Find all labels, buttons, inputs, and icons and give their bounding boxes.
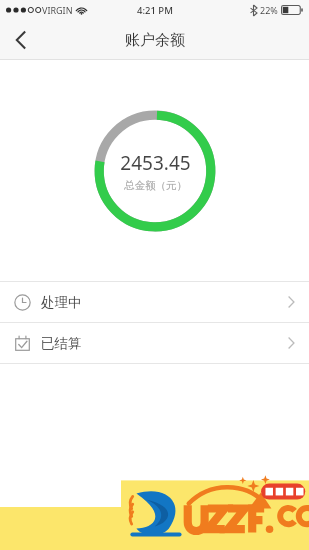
button[interactable]: 已结算 [0,323,309,363]
staticText: 处理中 [41,294,82,311]
staticText: 已结算 [41,335,82,352]
button[interactable]: 处理中 [0,282,309,322]
staticText: 总金额（元） [124,179,187,192]
staticText: 2453.45 [120,150,191,176]
button[interactable]: Back [0,20,40,60]
staticText: 账户余额 [125,31,185,50]
staticText: 22% [260,4,278,16]
staticText: 4:21 PM [137,4,173,17]
staticText: VIRGIN [42,4,73,16]
